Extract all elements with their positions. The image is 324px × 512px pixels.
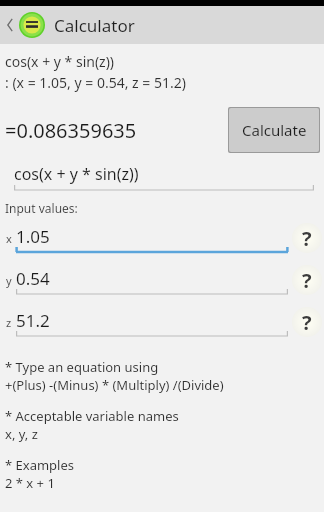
button[interactable]: 51.2 [16, 307, 288, 338]
staticText: : (x = 1.05, y = 0.54, z = 51.2) [5, 73, 186, 92]
staticText: x, y, z [5, 425, 38, 443]
staticText: 1.05 [16, 225, 50, 248]
staticText: y [6, 273, 12, 288]
staticText: ? [302, 225, 312, 252]
staticText: Calculator [54, 14, 135, 37]
staticText: =0.086359635 [5, 117, 228, 144]
staticText: 0.54 [16, 267, 50, 290]
staticText: Calculate [242, 120, 307, 140]
staticText: 51.2 [16, 309, 50, 332]
staticText: ? [302, 309, 312, 336]
button[interactable]: 0.54 [16, 265, 288, 296]
button[interactable]: 1.05 [16, 223, 288, 254]
staticText: z [6, 315, 12, 330]
staticText: * Acceptable variable names [5, 407, 179, 425]
staticText: +(Plus) -(Minus) * (Multiply) /(Divide) [5, 376, 224, 394]
staticText: cos(x + y * sin(z)) [14, 163, 139, 185]
staticText: cos(x + y * sin(z)) [5, 52, 115, 71]
button[interactable]: Help [292, 223, 322, 253]
staticText: Input values: [5, 200, 78, 216]
button[interactable]: cos(x + y * sin(z)) [14, 161, 314, 192]
button[interactable]: Help [292, 307, 322, 337]
button[interactable]: Help [292, 265, 322, 295]
button[interactable]: Back [0, 12, 47, 38]
staticText: x [6, 231, 12, 246]
staticText: 2 * x + 1 [5, 474, 55, 492]
button[interactable]: Calculate [229, 108, 319, 152]
staticText: * Type an equation using [5, 358, 159, 376]
staticText: * Examples [5, 456, 75, 474]
staticText: ? [302, 267, 312, 294]
